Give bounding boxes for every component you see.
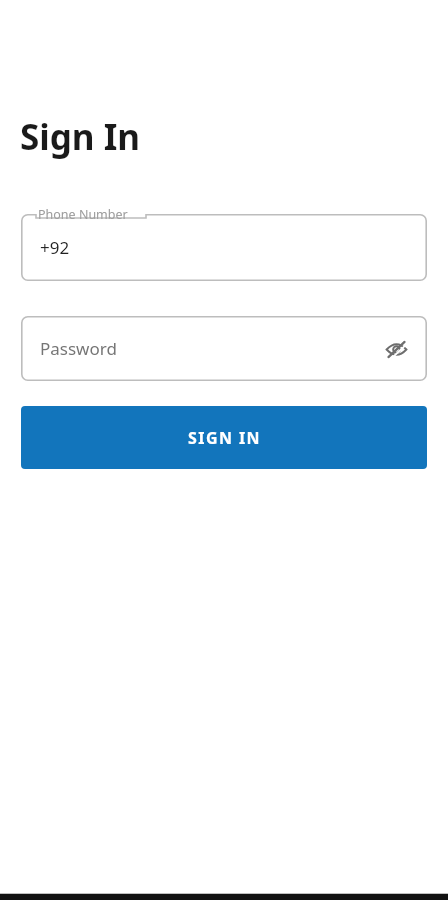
staticText: SIGN IN [188, 427, 261, 449]
staticText: Password [40, 337, 117, 360]
staticText: +92 [40, 236, 70, 259]
staticText: Sign In [20, 113, 141, 161]
button[interactable]: SIGN IN [21, 406, 427, 469]
button[interactable]: +92 [21, 214, 427, 281]
button[interactable]: Show password [379, 332, 413, 366]
button[interactable]: Password [21, 316, 427, 381]
staticText: Phone Number [38, 206, 128, 223]
